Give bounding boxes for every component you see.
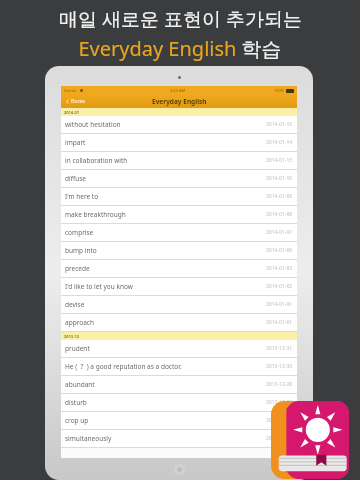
button[interactable]: bump into: [61, 242, 297, 259]
staticText: 2013-12-31: [266, 345, 293, 352]
staticText: comprise: [65, 228, 94, 237]
button[interactable]: I'd like to let you know: [61, 278, 297, 295]
button[interactable]: I'm here to: [61, 188, 297, 205]
staticText: 2013-12-26: [266, 399, 293, 406]
staticText: 2014-01-10: [266, 175, 293, 182]
staticText: without hesitation: [65, 120, 121, 129]
staticText: devise: [65, 300, 85, 309]
staticText: 2014-01-03: [266, 265, 293, 272]
staticText: Everyday English: [152, 97, 207, 106]
staticText: impart: [65, 138, 86, 147]
staticText: abundant: [65, 380, 95, 389]
staticText: Everyday English 학습: [78, 35, 282, 62]
staticText: 매일 새로운 표현이 추가되는: [59, 6, 302, 32]
button[interactable]: without hesitation: [61, 116, 297, 133]
staticText: make breakthrough: [65, 210, 126, 219]
staticText: 2:45 AM: [170, 88, 186, 93]
button[interactable]: precede: [61, 260, 297, 277]
button[interactable]: devise: [61, 296, 297, 313]
staticText: 2014-01-08: [266, 211, 293, 218]
staticText: Carrier: [64, 88, 78, 93]
staticText: precede: [65, 264, 90, 273]
staticText: 2014-01-13: [266, 157, 293, 164]
staticText: 2014-01-14: [266, 139, 293, 146]
button[interactable]: Everyday English app icon: [271, 401, 349, 479]
button[interactable]: make breakthrough: [61, 206, 297, 223]
staticText: disturb: [65, 398, 87, 407]
staticText: I'm here to: [65, 192, 99, 201]
staticText: 2014-01-01: [266, 319, 293, 326]
staticText: 2013-12-30: [266, 363, 293, 370]
staticText: 2014-01-02: [266, 283, 293, 290]
staticText: simultaneously: [65, 434, 112, 443]
button[interactable]: Boxes: [63, 97, 87, 106]
staticText: 2013-12-23: [266, 435, 293, 442]
staticText: prudent: [65, 344, 90, 353]
staticText: 2014-01-09: [266, 193, 293, 200]
staticText: I'd like to let you know: [65, 282, 133, 291]
button[interactable]: He ( ? ) a good reputation as a doctor.: [61, 358, 297, 375]
button[interactable]: disturb: [61, 394, 297, 411]
staticText: 2013-12: [64, 334, 80, 339]
button[interactable]: impart: [61, 134, 297, 151]
staticText: 2013-12-28: [266, 381, 293, 388]
button[interactable]: prudent: [61, 340, 297, 357]
button[interactable]: in collaboration with: [61, 152, 297, 169]
staticText: 2014-01-15: [266, 121, 293, 128]
staticText: 2014-01-06: [266, 247, 293, 254]
staticText: 2014-01: [64, 110, 80, 115]
staticText: in collaboration with: [65, 156, 128, 165]
staticText: diffuse: [65, 174, 86, 183]
staticText: 2013-12-24: [266, 417, 293, 424]
staticText: crop up: [65, 416, 89, 425]
button[interactable]: comprise: [61, 224, 297, 241]
staticText: bump into: [65, 246, 97, 255]
staticText: He ( ? ) a good reputation as a doctor.: [65, 362, 182, 371]
staticText: 2014-01-07: [266, 229, 293, 236]
staticText: 100%: [274, 88, 285, 93]
other: Home: [174, 464, 185, 475]
button[interactable]: diffuse: [61, 170, 297, 187]
staticText: Boxes: [71, 98, 85, 105]
button[interactable]: simultaneously: [61, 430, 297, 447]
button[interactable]: approach: [61, 314, 297, 331]
button[interactable]: crop up: [61, 412, 297, 429]
staticText: approach: [65, 318, 94, 327]
button[interactable]: abundant: [61, 376, 297, 393]
staticText: 2014-01-01: [266, 301, 293, 308]
